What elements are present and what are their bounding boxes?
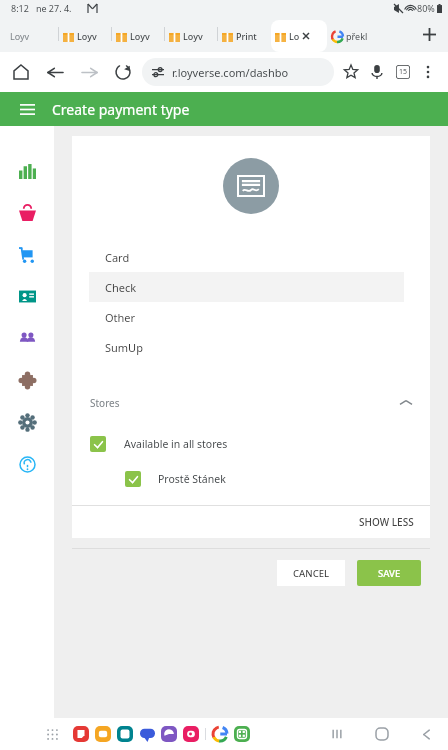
staticText: 15 bbox=[399, 67, 408, 77]
button[interactable]: More options bbox=[416, 60, 440, 84]
staticText: Prostě Stánek bbox=[158, 472, 226, 486]
button[interactable]: Navigation item bbox=[6, 443, 48, 485]
button[interactable]: SAVE bbox=[357, 560, 421, 586]
button[interactable]: Loyv bbox=[6, 20, 58, 52]
button[interactable]: Navigation item bbox=[6, 149, 48, 191]
button[interactable]: Navigation item bbox=[6, 233, 48, 275]
button[interactable]: překl bbox=[328, 20, 380, 52]
button[interactable]: Bookmark bbox=[338, 59, 364, 85]
staticText: r.loyverse.com/dashbo bbox=[172, 65, 289, 80]
button[interactable]: SumUp bbox=[89, 332, 404, 362]
button[interactable]: App bbox=[92, 723, 114, 745]
button[interactable]: App bbox=[114, 723, 136, 745]
button[interactable]: r.loyverse.com/dashbo bbox=[142, 58, 334, 86]
staticText: Card bbox=[105, 250, 130, 265]
button[interactable]: Home bbox=[8, 59, 34, 85]
button[interactable]: Navigation item bbox=[6, 275, 48, 317]
button[interactable]: Prostě Stánek bbox=[125, 467, 430, 491]
button[interactable]: Check bbox=[89, 272, 404, 302]
button[interactable]: Reload bbox=[110, 59, 136, 85]
staticText: Loyv bbox=[10, 30, 30, 42]
staticText: Loyv bbox=[130, 30, 150, 42]
button[interactable]: Stores bbox=[90, 396, 412, 410]
button[interactable]: Apps bbox=[41, 723, 63, 745]
button[interactable]: App bbox=[180, 723, 202, 745]
button[interactable]: New tab bbox=[414, 19, 444, 49]
button[interactable]: Close tab bbox=[302, 32, 310, 40]
staticText: Create payment type bbox=[52, 100, 190, 119]
staticText: Other bbox=[105, 310, 136, 325]
button[interactable]: Home bbox=[368, 720, 396, 748]
staticText: Check bbox=[105, 280, 137, 295]
staticText: 8:12 ne 27. 4. bbox=[11, 2, 72, 14]
button[interactable]: Navigation item bbox=[6, 401, 48, 443]
button[interactable]: Navigation item bbox=[6, 191, 48, 233]
staticText: SHOW LESS bbox=[359, 515, 414, 529]
button[interactable]: Loyv bbox=[59, 20, 111, 52]
button[interactable]: Navigation item bbox=[6, 359, 48, 401]
staticText: SumUp bbox=[105, 340, 143, 355]
staticText: Print bbox=[236, 30, 257, 42]
button[interactable]: Payment type image bbox=[223, 158, 279, 214]
button[interactable]: Voice search bbox=[364, 59, 390, 85]
staticText: Stores bbox=[90, 396, 120, 410]
button[interactable]: Card bbox=[89, 242, 404, 272]
staticText: Lo bbox=[289, 30, 300, 42]
staticText: SAVE bbox=[378, 567, 401, 580]
staticText: 80% bbox=[417, 2, 435, 14]
button[interactable]: Back bbox=[412, 720, 440, 748]
staticText: Payment type bbox=[90, 254, 149, 266]
button[interactable]: App bbox=[231, 723, 253, 745]
button[interactable]: Back bbox=[42, 59, 68, 85]
button[interactable]: CANCEL bbox=[277, 560, 345, 586]
staticText: Loyv bbox=[183, 30, 203, 42]
button[interactable]: Loyv bbox=[112, 20, 164, 52]
button[interactable]: Google bbox=[209, 723, 231, 745]
button[interactable]: App bbox=[158, 723, 180, 745]
button[interactable]: Print bbox=[218, 20, 270, 52]
button[interactable]: Menu bbox=[14, 96, 40, 122]
button[interactable]: Lo bbox=[271, 20, 327, 52]
staticText: CANCEL bbox=[293, 567, 330, 580]
button[interactable]: Tabs bbox=[390, 59, 416, 85]
staticText: Loyv bbox=[77, 30, 97, 42]
button[interactable]: Recents bbox=[323, 720, 351, 748]
staticText: překl bbox=[346, 30, 368, 42]
button[interactable]: Available in all stores bbox=[90, 432, 430, 456]
staticText: Available in all stores bbox=[124, 437, 228, 451]
button[interactable]: Other bbox=[89, 302, 404, 332]
button[interactable]: Loyv bbox=[165, 20, 217, 52]
button[interactable] bbox=[89, 274, 413, 300]
button[interactable]: Messages bbox=[136, 723, 158, 745]
button[interactable]: SHOW LESS bbox=[343, 507, 430, 537]
button[interactable]: App bbox=[70, 723, 92, 745]
button[interactable]: Forward bbox=[76, 59, 102, 85]
button[interactable]: Navigation item bbox=[6, 317, 48, 359]
